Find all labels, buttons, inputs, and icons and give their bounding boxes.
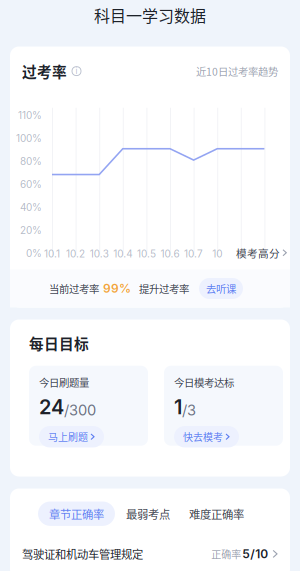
staticText: 10.2 xyxy=(66,248,85,260)
staticText: 10.6 xyxy=(160,248,179,260)
staticText: 10.1 xyxy=(44,248,60,260)
button[interactable]: 快去模考 xyxy=(174,426,239,447)
staticText: 80% xyxy=(20,155,42,167)
staticText: 去听课 xyxy=(206,281,236,296)
staticText: 过考率 xyxy=(22,60,67,82)
staticText: 近10日过考率趋势 xyxy=(196,64,278,79)
staticText: 10.5 xyxy=(137,248,156,260)
staticText: 20% xyxy=(20,224,42,236)
staticText: 正确率 xyxy=(211,547,241,561)
button[interactable]: 去听课 xyxy=(199,278,243,299)
staticText: 100% xyxy=(16,132,42,144)
button[interactable]: 驾驶证和机动车管理规定 xyxy=(10,539,290,569)
staticText: 0% xyxy=(26,247,42,259)
staticText: 40% xyxy=(20,201,42,213)
staticText: 10.7 xyxy=(184,248,203,260)
staticText: 驾驶证和机动车管理规定 xyxy=(22,546,143,562)
staticText: 1 xyxy=(174,395,182,419)
staticText: 难度正确率 xyxy=(189,505,244,522)
staticText: 模考高分 xyxy=(236,245,280,260)
staticText: 5/10 xyxy=(242,547,268,561)
staticText: /3 xyxy=(182,401,196,419)
button[interactable]: 马上刷题 xyxy=(39,426,104,447)
button[interactable]: 最弱考点 xyxy=(115,501,181,526)
staticText: 10 xyxy=(212,248,222,260)
staticText: 每日目标 xyxy=(29,332,89,354)
staticText: 10.4 xyxy=(113,248,132,260)
staticText: 马上刷题 xyxy=(48,429,88,444)
staticText: 章节正确率 xyxy=(49,505,104,522)
staticText: 10.3 xyxy=(90,248,109,260)
staticText: 当前过考率 xyxy=(49,281,99,296)
staticText: 60% xyxy=(20,178,42,190)
staticText: i xyxy=(75,66,77,76)
button[interactable]: 难度正确率 xyxy=(181,501,252,526)
staticText: /300 xyxy=(64,401,96,419)
staticText: 提升过考率 xyxy=(139,281,189,296)
staticText: 110% xyxy=(18,109,42,121)
button[interactable]: 章节正确率 xyxy=(38,501,115,526)
button[interactable]: 模考高分 xyxy=(236,246,288,260)
staticText: 今日刷题量 xyxy=(39,375,89,390)
staticText: 最弱考点 xyxy=(126,505,170,522)
staticText: 24 xyxy=(39,395,64,419)
staticText: 今日模考达标 xyxy=(174,375,234,390)
staticText: 科目一学习数据 xyxy=(94,3,206,27)
staticText: 99% xyxy=(103,281,131,296)
staticText: 快去模考 xyxy=(183,429,223,444)
